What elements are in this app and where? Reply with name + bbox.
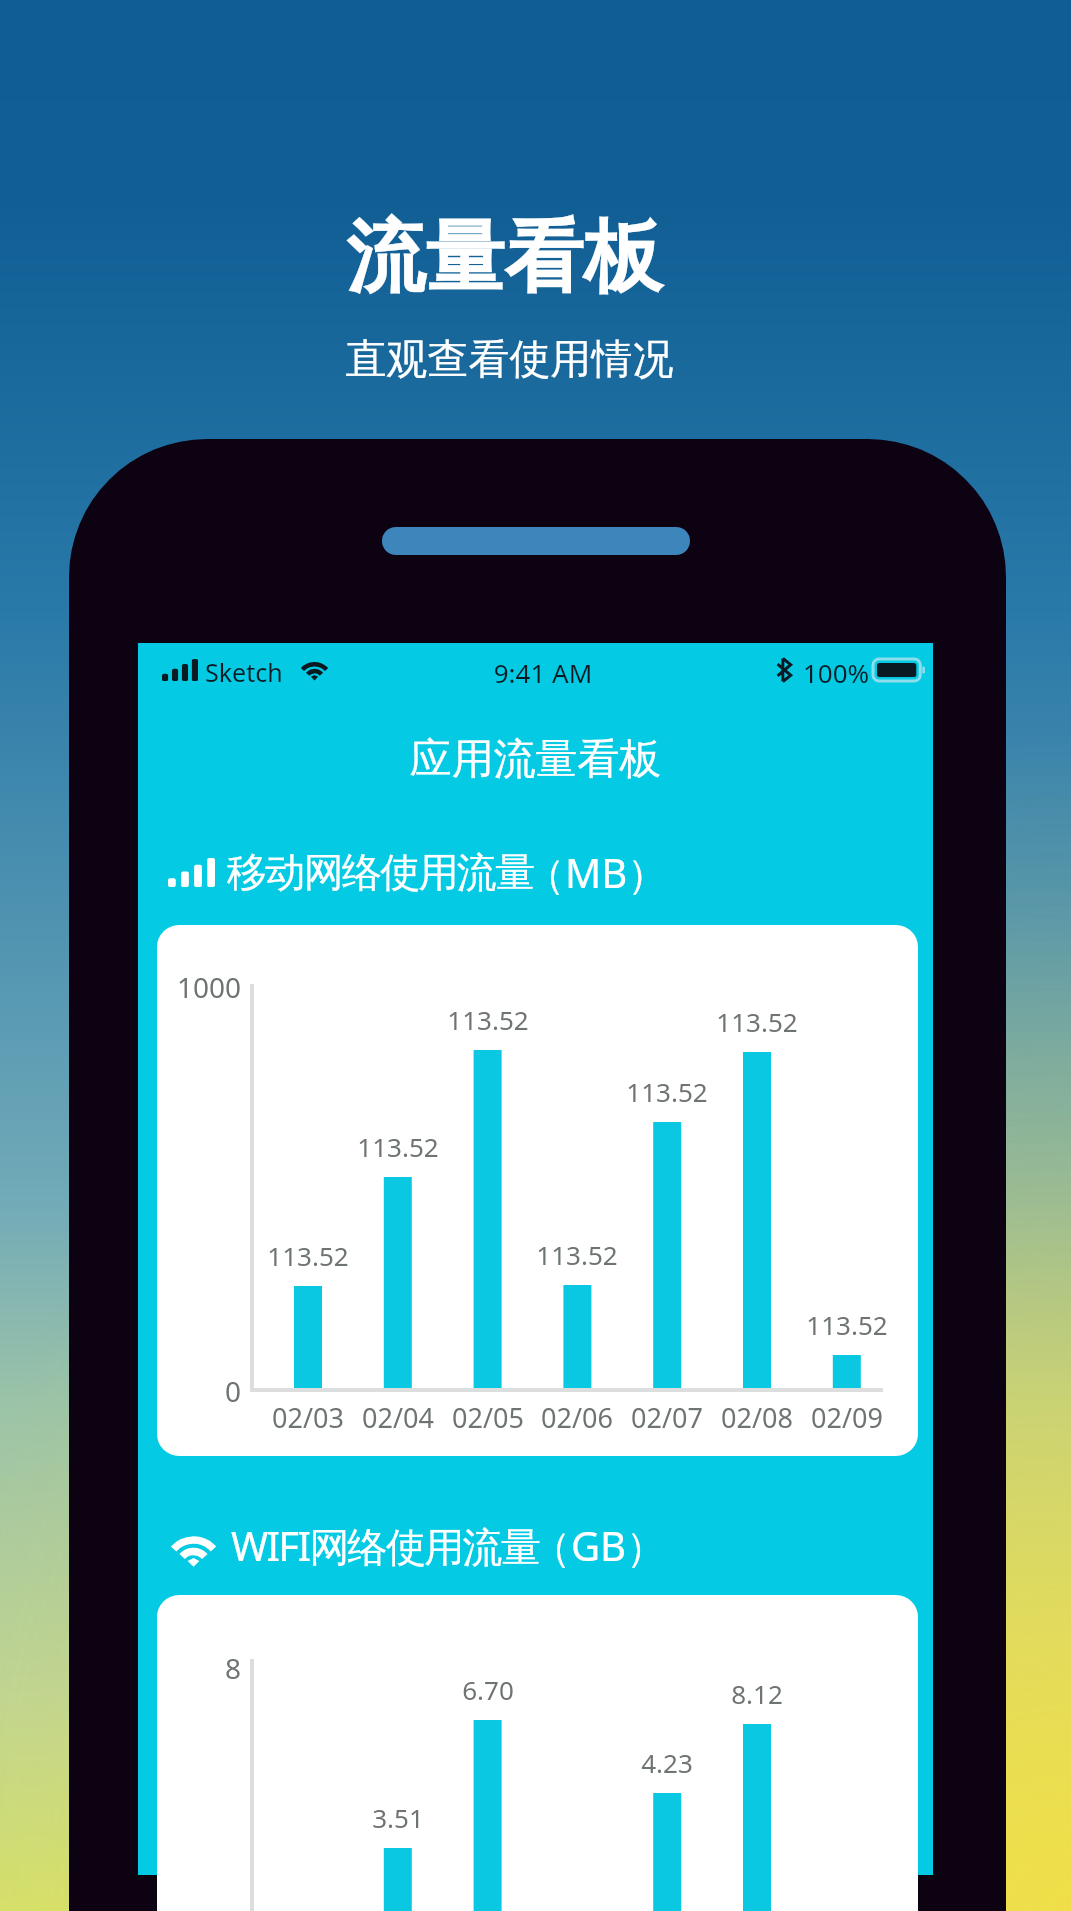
staticText: WIFI网络使用流量 [231, 1518, 540, 1573]
staticText: 02/03 [248, 1399, 368, 1436]
other: Cellular signal strength [162, 659, 198, 681]
other: Bluetooth on [777, 658, 791, 682]
staticText: 6.70 [428, 1672, 548, 1707]
staticText: 1000 [157, 968, 241, 1006]
staticText: 9:41 AM [443, 655, 643, 690]
staticText: 流量看板 [0, 208, 1040, 308]
staticText: 113.52 [607, 1074, 727, 1109]
button[interactable]: WIFI网络使用流量 [168, 1516, 676, 1574]
staticText: 02/06 [517, 1399, 637, 1436]
staticText: 02/04 [338, 1399, 458, 1436]
staticText: （MB） [525, 845, 668, 900]
staticText: （GB） [531, 1518, 667, 1573]
staticText: 直观查看使用情况 [0, 334, 1045, 386]
staticText: 113.52 [248, 1238, 368, 1273]
staticText: 02/07 [607, 1399, 727, 1436]
staticText: Sketch [205, 655, 283, 689]
staticText: 113.52 [338, 1129, 458, 1164]
staticText: 113.52 [787, 1307, 907, 1342]
staticText: 113.52 [517, 1237, 637, 1272]
other: Battery full [872, 658, 925, 682]
button[interactable]: 8 [157, 1595, 918, 1911]
staticText: 100% [803, 655, 870, 690]
staticText: 113.52 [697, 1004, 817, 1039]
staticText: 02/05 [428, 1399, 548, 1436]
staticText: 8 [157, 1649, 241, 1687]
button[interactable]: 移动网络使用流量 [168, 843, 677, 901]
other: Wi-Fi connected [299, 659, 330, 680]
staticText: 02/09 [787, 1399, 907, 1436]
staticText: 113.52 [428, 1002, 548, 1037]
staticText: 8.12 [697, 1676, 817, 1711]
button[interactable]: 1000 [157, 925, 918, 1456]
staticText: 应用流量看板 [138, 733, 933, 786]
staticText: 0 [157, 1372, 241, 1410]
staticText: 4.23 [607, 1745, 727, 1780]
staticText: 移动网络使用流量 [227, 847, 534, 897]
staticText: 02/08 [697, 1399, 817, 1436]
staticText: 3.51 [338, 1800, 458, 1835]
